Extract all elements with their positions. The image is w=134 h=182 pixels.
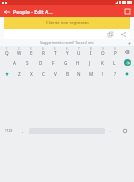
staticText: Z [18,71,21,77]
button[interactable]: J [84,57,96,68]
staticText: U [77,50,81,56]
button[interactable]: Share [119,30,127,38]
button[interactable]: 7 [73,46,85,57]
staticText: L [113,60,116,66]
button[interactable]: B [61,68,73,79]
button[interactable]: Cliente non registrato [4,17,130,29]
button[interactable]: F [47,57,60,68]
staticText: 9 [102,47,104,51]
button[interactable]: ?123 [1,80,17,181]
button[interactable]: K [96,57,108,68]
staticText: K [101,60,104,66]
button[interactable]: S [21,57,34,68]
staticText: H [76,60,80,66]
staticText: W [17,50,22,56]
button[interactable]: 1 [1,46,13,57]
staticText: ! [102,71,104,77]
staticText: Cliente non registrato [46,20,89,26]
staticText: 8 [90,47,92,51]
staticText: P [114,50,117,56]
staticText: T [54,50,57,56]
button[interactable]: G [60,57,72,68]
staticText: J [89,60,91,66]
button[interactable]: M [85,68,97,79]
staticText: 2 [18,47,20,51]
staticText: E [30,50,33,56]
button[interactable]: 8 [85,46,97,57]
staticText: A [13,60,16,66]
button[interactable]: 6 [61,46,73,57]
button[interactable]: Settings [126,40,132,46]
staticText: 6 [66,47,68,51]
button[interactable]: V [49,68,61,79]
staticText: 5 [54,47,56,51]
staticText: 7 [78,47,80,51]
staticText: V [54,71,57,77]
button[interactable]: 4 [37,46,49,57]
staticText: Suggerimento nomi? Tocca il mic [40,40,94,45]
staticText: Y [66,50,69,56]
button[interactable]: L [108,57,120,68]
staticText: ? [114,71,116,77]
staticText: G [64,60,68,66]
button[interactable]: Backspace [121,46,133,57]
staticText: ?123 [5,128,13,133]
button[interactable]: ! [97,68,109,79]
staticText: . [110,128,112,134]
staticText: D [39,60,43,66]
button[interactable]: Navigate up [2,7,11,16]
staticText: 1 [6,47,8,51]
button[interactable]: 5 [49,46,61,57]
staticText: M [89,71,94,77]
button[interactable]: 2 [13,46,25,57]
staticText: X [30,71,33,77]
button[interactable]: ? [109,68,121,79]
staticText: B [66,71,69,77]
button[interactable]: D [34,57,47,68]
button[interactable]: Z [13,68,25,79]
button[interactable]: A [8,57,21,68]
button[interactable]: Emoji [121,68,133,79]
button[interactable]: Shift [1,68,13,79]
staticText: People - Edit A... [13,8,53,15]
button[interactable]: Copy [106,30,114,38]
button[interactable]: 0 [109,46,121,57]
button[interactable]: Save [123,7,132,16]
button[interactable]: N [73,68,85,79]
staticText: I [90,50,92,56]
staticText: C [42,71,45,77]
button[interactable]: 9 [97,46,109,57]
staticText: 4 [42,47,44,51]
staticText: , [22,128,24,134]
staticText: R [42,50,45,56]
staticText: 3 [30,47,32,51]
staticText: F [52,60,55,66]
staticText: N [77,71,81,77]
staticText: O [101,50,105,56]
button[interactable]: C [37,68,49,79]
staticText: Q [5,50,9,56]
staticText: S [26,60,29,66]
button[interactable]: Language [117,80,133,181]
button[interactable]: Enter [121,57,133,68]
button[interactable]: X [25,68,37,79]
staticText: 0 [114,47,116,51]
button[interactable]: H [72,57,84,68]
button[interactable]: 3 [25,46,37,57]
